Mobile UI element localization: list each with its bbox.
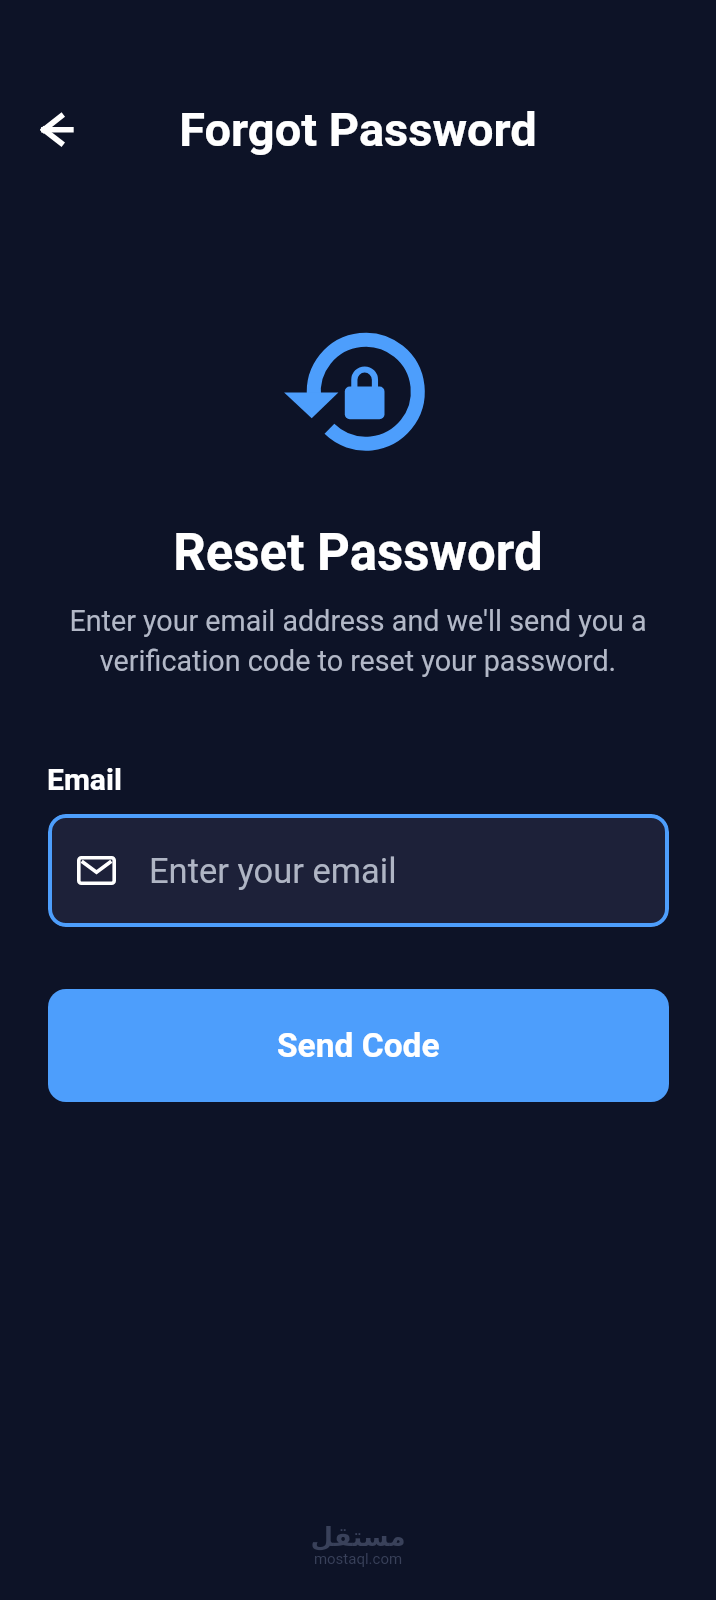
staticText: Enter your email address and we'll send … xyxy=(0,604,716,678)
staticText: Enter your email xyxy=(149,851,397,891)
button[interactable]: Send Code xyxy=(48,989,669,1102)
staticText: Reset Password xyxy=(0,523,716,583)
staticText: مستقل xyxy=(0,1522,716,1552)
staticText: Send Code xyxy=(277,1026,440,1065)
button[interactable]: Enter your email xyxy=(48,814,669,927)
button[interactable]: Back xyxy=(29,101,85,157)
staticText: Forgot Password xyxy=(0,102,716,157)
staticText: mostaql.com xyxy=(0,1550,716,1568)
staticText: Email xyxy=(47,762,122,797)
